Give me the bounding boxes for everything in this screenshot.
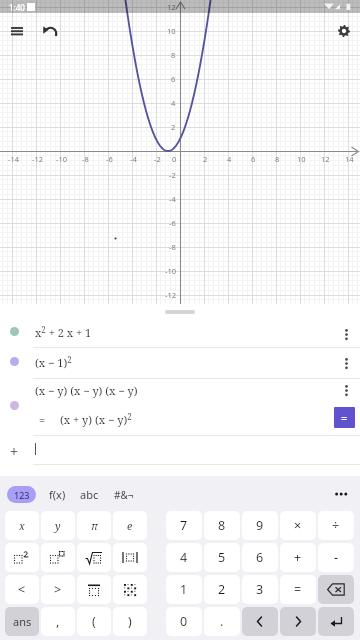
- button[interactable]: 9: [242, 511, 278, 540]
- button[interactable]: Undo: [37, 18, 63, 44]
- button[interactable]: 5: [204, 543, 240, 572]
- button[interactable]: (: [77, 607, 111, 636]
- button[interactable]: 123: [7, 486, 36, 503]
- button[interactable]: More options: [336, 349, 356, 377]
- button[interactable]: Move left: [242, 607, 278, 636]
- staticText: 4: [227, 154, 232, 164]
- staticText: 8: [275, 154, 280, 164]
- staticText: abc: [80, 487, 99, 502]
- button[interactable]: ans: [5, 607, 39, 636]
- staticText: 2: [171, 122, 176, 132]
- button[interactable]: 1: [166, 575, 202, 604]
- button[interactable]: [5, 543, 39, 572]
- staticText: =: [39, 412, 46, 427]
- staticText: 4: [171, 98, 176, 108]
- staticText: 8: [218, 517, 226, 534]
- staticText: ): [128, 613, 132, 630]
- staticText: (x − 1)2: [35, 354, 72, 370]
- button[interactable]: abc: [76, 484, 102, 505]
- button[interactable]: ): [113, 607, 147, 636]
- button[interactable]: [77, 575, 111, 604]
- staticText: (x + y) (x − y)2: [60, 411, 132, 427]
- button[interactable]: .: [204, 607, 240, 636]
- button[interactable]: -: [318, 543, 354, 572]
- staticText: 5: [218, 549, 226, 566]
- button[interactable]: y: [41, 511, 75, 540]
- button[interactable]: [113, 575, 147, 604]
- staticText: 6: [251, 154, 256, 164]
- button[interactable]: [0, 349, 360, 380]
- button[interactable]: [41, 543, 75, 572]
- staticText: -2: [169, 170, 176, 180]
- staticText: -8: [82, 154, 89, 164]
- button[interactable]: More keyboard options: [326, 481, 356, 507]
- button[interactable]: 4: [166, 543, 202, 572]
- button[interactable]: =: [280, 575, 316, 604]
- button[interactable]: ×: [280, 511, 316, 540]
- staticText: +: [294, 549, 302, 566]
- staticText: -6: [169, 218, 176, 228]
- button[interactable]: Menu: [1, 18, 33, 44]
- staticText: 10: [167, 26, 176, 36]
- staticText: -14: [8, 154, 19, 164]
- button[interactable]: More options: [336, 376, 356, 404]
- button[interactable]: ,: [41, 607, 75, 636]
- button[interactable]: f(x): [44, 484, 70, 505]
- button[interactable]: [0, 437, 360, 471]
- staticText: -8: [169, 242, 176, 252]
- staticText: #&¬: [114, 488, 134, 502]
- button[interactable]: [0, 318, 360, 349]
- staticText: ans: [13, 614, 32, 629]
- staticText: 12: [167, 2, 176, 12]
- staticText: ×: [294, 517, 302, 534]
- button[interactable]: e: [113, 511, 147, 540]
- button[interactable]: 6: [242, 543, 278, 572]
- staticText: 1:40: [9, 2, 25, 13]
- button[interactable]: π: [77, 511, 111, 540]
- button[interactable]: <: [5, 575, 39, 604]
- staticText: =: [341, 410, 348, 425]
- staticText: -6: [106, 154, 113, 164]
- staticText: -10: [56, 154, 67, 164]
- staticText: 6: [171, 74, 176, 84]
- button[interactable]: 2: [204, 575, 240, 604]
- button[interactable]: 3: [242, 575, 278, 604]
- button[interactable]: ÷: [318, 511, 354, 540]
- staticText: .: [220, 613, 224, 630]
- button[interactable]: [0, 380, 360, 437]
- staticText: 7: [180, 517, 188, 534]
- staticText: ,: [56, 613, 60, 630]
- staticText: x2 + 2 x + 1: [35, 324, 92, 340]
- button[interactable]: +: [280, 543, 316, 572]
- button[interactable]: Enter: [318, 607, 354, 636]
- staticText: 2: [218, 581, 226, 598]
- staticText: x: [19, 519, 25, 533]
- button[interactable]: x: [5, 511, 39, 540]
- button[interactable]: [113, 543, 147, 572]
- button[interactable]: 7: [166, 511, 202, 540]
- staticText: <: [18, 581, 26, 598]
- button[interactable]: [77, 543, 111, 572]
- other: Backspace: [327, 583, 345, 596]
- button[interactable]: 0: [166, 607, 202, 636]
- staticText: ÷: [332, 517, 340, 534]
- staticText: 0: [172, 154, 177, 164]
- button[interactable]: Evaluate: [334, 407, 355, 428]
- staticText: 8: [171, 50, 176, 60]
- staticText: 10: [297, 154, 306, 164]
- staticText: -4: [130, 154, 137, 164]
- staticText: -10: [165, 266, 176, 276]
- other: Move left: [255, 616, 265, 627]
- button[interactable]: >: [41, 575, 75, 604]
- button[interactable]: Settings: [331, 18, 357, 44]
- button[interactable]: 8: [204, 511, 240, 540]
- button[interactable]: Backspace: [318, 575, 354, 604]
- button[interactable]: #&¬: [110, 484, 138, 505]
- staticText: -2: [154, 154, 161, 164]
- staticText: e: [127, 519, 133, 533]
- staticText: =: [294, 581, 302, 598]
- button[interactable]: More options: [336, 320, 356, 348]
- staticText: -12: [32, 154, 43, 164]
- button[interactable]: Move right: [280, 607, 316, 636]
- staticText: f(x): [49, 487, 66, 502]
